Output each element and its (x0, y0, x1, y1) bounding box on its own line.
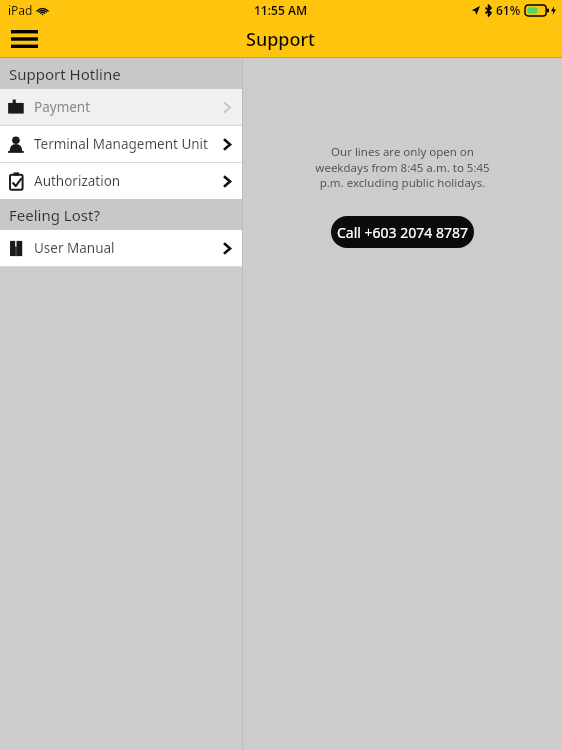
button[interactable]: Menu (4, 22, 44, 56)
staticText: User Manual (34, 239, 115, 257)
staticText: 61% (496, 2, 521, 18)
staticText: Authorization (34, 172, 121, 190)
button[interactable]: Authorization (0, 163, 242, 199)
staticText: 11:55 AM (254, 2, 308, 18)
staticText: Support (246, 27, 316, 52)
staticText: Our lines are only open on weekdays from… (310, 144, 495, 190)
button[interactable]: Terminal Management Unit (0, 126, 242, 162)
staticText: Terminal Management Unit (34, 135, 208, 153)
staticText: iPad (8, 2, 33, 18)
button[interactable]: Call +603 2074 8787 (331, 216, 474, 248)
staticText: Feeling Lost? (9, 205, 100, 225)
button[interactable]: Payment (0, 89, 242, 125)
staticText: Support Hotline (9, 64, 121, 84)
button[interactable]: User Manual (0, 230, 242, 266)
staticText: Call +603 2074 8787 (337, 223, 468, 242)
staticText: Payment (34, 98, 91, 116)
